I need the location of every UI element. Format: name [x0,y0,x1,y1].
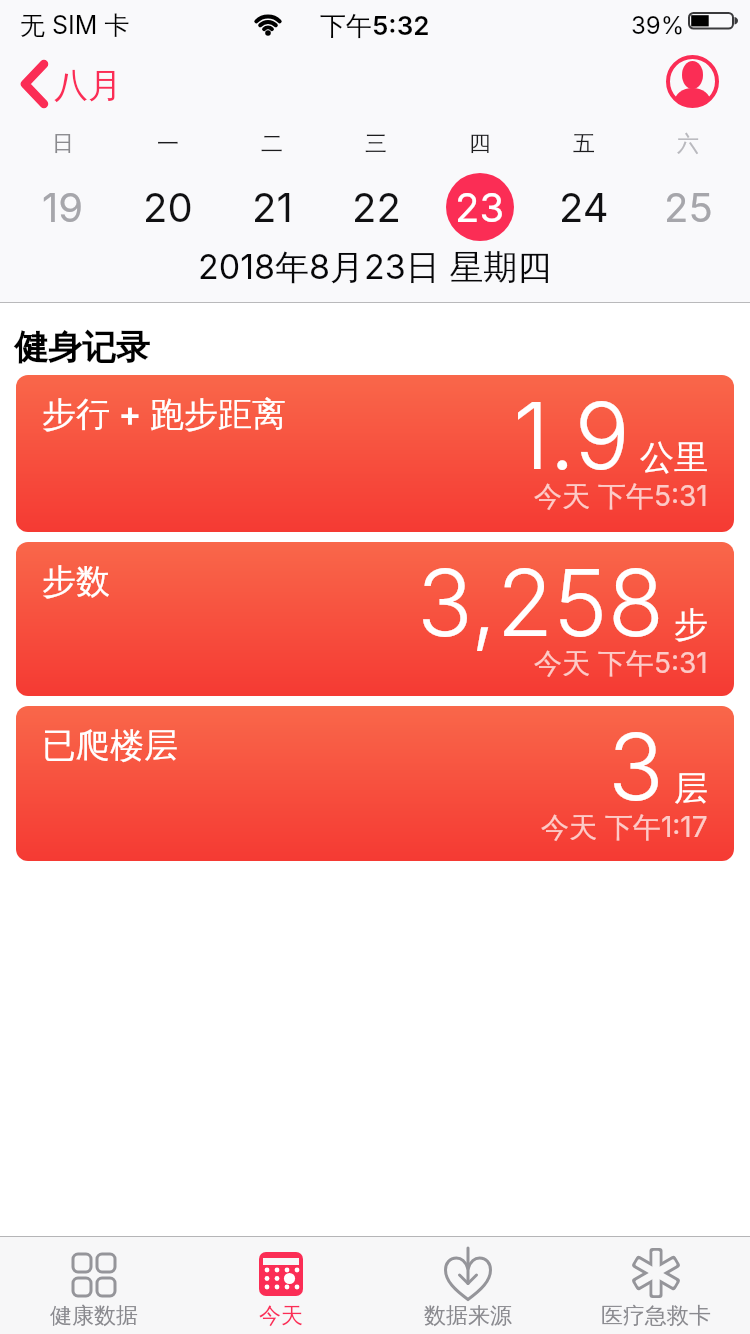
staticText: 步行 + 跑步距离 [42,393,287,436]
button[interactable]: 24 [532,172,636,242]
staticText: 21 [252,183,293,231]
button[interactable]: 医疗急救卡 [562,1236,750,1334]
staticText: 24 [559,183,609,231]
staticText: 一 [157,130,179,158]
staticText: 今天 下午5:31 [534,646,708,681]
staticText: 下午5:32 [320,10,430,43]
staticText: 医疗急救卡 [601,1302,711,1330]
staticText: 1.9 [513,380,630,491]
staticText: 五 [573,130,595,158]
staticText: 25 [664,183,713,231]
button[interactable]: 23 [428,172,532,242]
button[interactable]: 今天 [187,1236,374,1334]
staticText: 3,258 [417,547,664,658]
staticText: 三 [365,130,387,158]
button[interactable]: 步行 + 跑步距离 [16,375,734,532]
staticText: 22 [352,183,401,231]
staticText: 20 [143,183,193,231]
staticText: 无 SIM 卡 [20,10,130,42]
staticText: 23 [455,183,505,231]
button[interactable]: 20 [115,172,220,242]
button[interactable]: 19 [10,172,115,242]
button[interactable]: 已爬楼层 [16,706,734,861]
button[interactable]: 25 [636,172,740,242]
staticText: 今天 [259,1302,303,1330]
staticText: 数据来源 [424,1302,512,1330]
button[interactable]: 21 [220,172,324,242]
button[interactable]: 22 [324,172,428,242]
staticText: 公里 [640,436,708,479]
staticText: 步数 [42,560,110,603]
staticText: 已爬楼层 [42,724,178,767]
staticText: 八月 [54,64,122,107]
staticText: 步 [674,603,708,646]
staticText: 39% [631,11,685,40]
staticText: 健康数据 [50,1302,138,1330]
button[interactable]: 八月 [8,52,118,116]
staticText: 六 [677,130,699,158]
staticText: 四 [469,130,491,158]
button[interactable] [664,53,721,110]
staticText: 2018年8月23日 星期四 [198,246,552,289]
staticText: 日 [52,130,74,158]
button[interactable]: 步数 [16,542,734,696]
staticText: 今天 下午1:17 [541,810,708,845]
staticText: 健身记录 [14,326,150,369]
staticText: 3 [608,711,664,822]
staticText: 19 [42,183,84,231]
staticText: 层 [674,767,708,810]
button[interactable]: 健康数据 [0,1236,187,1334]
button[interactable]: 数据来源 [374,1236,562,1334]
staticText: 今天 下午5:31 [534,479,708,514]
staticText: 二 [261,130,283,158]
